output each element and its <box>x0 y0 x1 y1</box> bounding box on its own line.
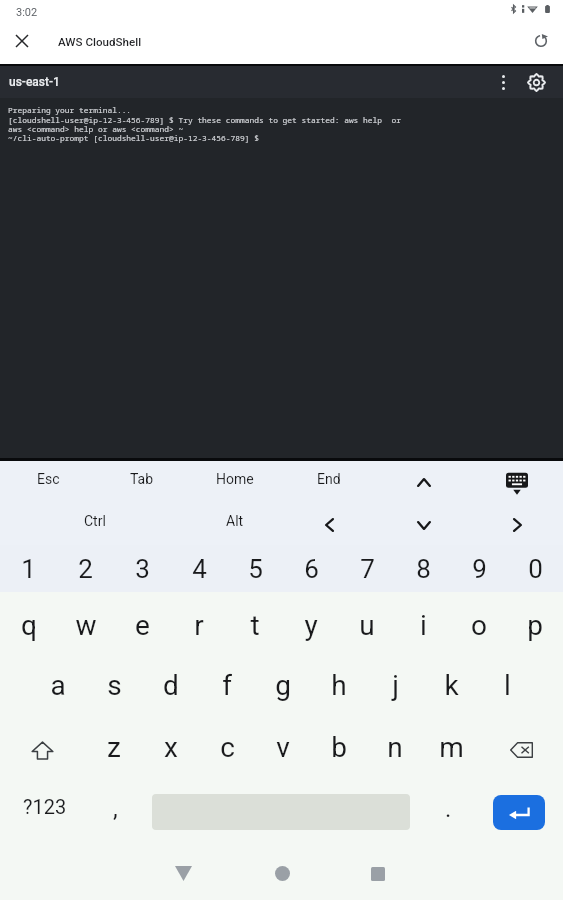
staticText: 8 <box>416 554 431 584</box>
button[interactable]: Ctrl <box>62 501 128 541</box>
button[interactable]: Esc <box>15 459 81 499</box>
button[interactable]: f <box>199 652 255 712</box>
staticText: 3 <box>135 554 150 584</box>
staticText: r <box>194 609 204 642</box>
button[interactable]: 0 <box>507 545 563 592</box>
staticText: . <box>445 795 452 823</box>
staticText: p <box>527 609 543 642</box>
button[interactable]: Scroll up <box>391 462 457 502</box>
staticText: m <box>439 731 464 764</box>
button[interactable]: 1 <box>0 545 57 592</box>
button[interactable]: n <box>367 712 423 772</box>
staticText: 4 <box>192 554 207 584</box>
staticText: d <box>163 669 179 702</box>
button[interactable]: Left <box>296 505 362 545</box>
button[interactable]: p <box>507 592 563 652</box>
button[interactable]: Tab <box>109 459 175 499</box>
staticText: y <box>304 609 318 642</box>
button[interactable]: More options <box>489 68 517 96</box>
staticText: i <box>420 609 427 642</box>
staticText: 9 <box>472 554 487 584</box>
button[interactable]: k <box>423 652 479 712</box>
button[interactable]: 5 <box>227 545 283 592</box>
button[interactable]: Home <box>202 459 268 499</box>
button[interactable]: , <box>90 784 140 834</box>
button[interactable]: m <box>423 712 479 772</box>
button[interactable]: s <box>86 652 143 712</box>
button[interactable]: g <box>255 652 311 712</box>
staticText: w <box>75 609 97 642</box>
staticText: 5 <box>248 554 263 584</box>
button[interactable]: 8 <box>395 545 451 592</box>
button[interactable]: Shift <box>0 712 85 772</box>
button[interactable]: e <box>114 592 171 652</box>
button[interactable]: Back <box>159 851 207 896</box>
button[interactable]: Hide keyboard <box>484 461 550 501</box>
button[interactable]: Enter <box>493 795 545 830</box>
staticText: e <box>135 609 150 642</box>
button[interactable]: Right <box>484 505 550 545</box>
staticText: g <box>275 669 291 702</box>
staticText: x <box>164 731 178 764</box>
staticText: ?123 <box>23 795 67 818</box>
button[interactable]: ?123 <box>10 781 80 831</box>
staticText: 3:02 <box>16 6 38 19</box>
button[interactable]: 9 <box>451 545 507 592</box>
staticText: t <box>250 609 260 642</box>
staticText: 2 <box>78 554 93 584</box>
button[interactable]: . <box>425 784 471 834</box>
staticText: j <box>392 669 399 702</box>
button[interactable]: Close <box>5 24 39 58</box>
staticText: f <box>222 669 232 702</box>
button[interactable]: h <box>311 652 367 712</box>
staticText: 7 <box>360 554 375 584</box>
staticText: a <box>50 669 66 702</box>
staticText: , <box>113 795 118 823</box>
button[interactable]: r <box>171 592 227 652</box>
button[interactable]: t <box>227 592 283 652</box>
staticText: b <box>331 731 347 764</box>
button[interactable]: Alt <box>202 501 268 541</box>
button[interactable]: Recents <box>354 851 402 896</box>
button[interactable]: Refresh <box>524 24 558 58</box>
button[interactable]: o <box>451 592 507 652</box>
button[interactable]: z <box>85 712 142 772</box>
button[interactable]: y <box>283 592 339 652</box>
button[interactable]: Backspace <box>479 712 563 772</box>
staticText: [cloudshell-user@ip-12-3-456-789] $ Try … <box>8 115 401 126</box>
staticText: us-east-1 <box>9 75 60 89</box>
staticText: Preparing your terminal... <box>8 105 132 116</box>
button[interactable]: i <box>395 592 451 652</box>
staticText: Tab <box>130 471 154 487</box>
button[interactable]: u <box>339 592 395 652</box>
button[interactable]: End <box>296 459 362 499</box>
button[interactable]: x <box>142 712 199 772</box>
button[interactable]: d <box>143 652 199 712</box>
staticText: Alt <box>226 513 244 529</box>
staticText: k <box>444 669 459 702</box>
button[interactable]: 3 <box>114 545 171 592</box>
button[interactable]: l <box>479 652 535 712</box>
button[interactable]: b <box>311 712 367 772</box>
button[interactable]: Home <box>258 851 306 896</box>
staticText: c <box>220 731 235 764</box>
button[interactable]: w <box>57 592 114 652</box>
staticText: o <box>471 609 487 642</box>
staticText: aws <command> help or aws <command> ~ <box>8 124 184 135</box>
button[interactable]: 7 <box>339 545 395 592</box>
button[interactable]: q <box>0 592 57 652</box>
staticText: n <box>387 731 403 764</box>
button[interactable]: a <box>29 652 86 712</box>
button[interactable]: 2 <box>57 545 114 592</box>
button[interactable]: Settings <box>522 68 550 96</box>
button[interactable]: Scroll down <box>391 505 457 545</box>
button[interactable]: c <box>199 712 255 772</box>
button[interactable]: v <box>255 712 311 772</box>
staticText: 6 <box>304 554 319 584</box>
staticText: ~/cli-auto-prompt [cloudshell-user@ip-12… <box>8 133 259 144</box>
button[interactable]: 6 <box>283 545 339 592</box>
button[interactable]: 4 <box>171 545 227 592</box>
staticText: z <box>107 731 121 764</box>
button[interactable]: j <box>367 652 423 712</box>
